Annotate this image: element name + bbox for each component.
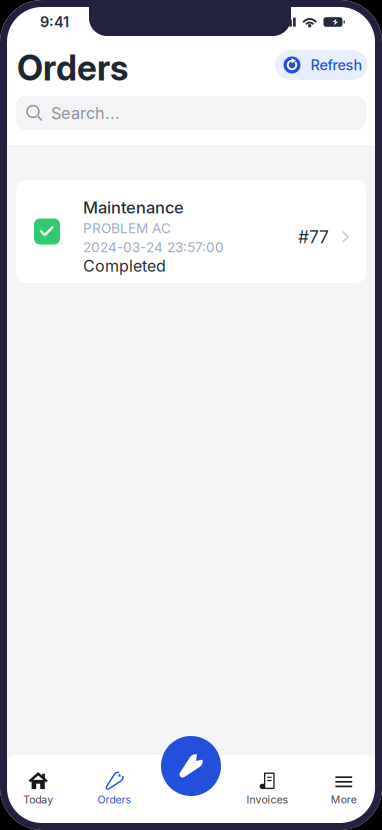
staticText: Completed xyxy=(83,256,166,275)
staticText: Invoices xyxy=(246,793,288,806)
button[interactable]: Today xyxy=(0,755,76,823)
staticText: #77 xyxy=(298,226,329,247)
button[interactable]: Maintenance xyxy=(16,180,366,283)
staticText: Refresh xyxy=(310,56,362,74)
staticText: 9:41 xyxy=(40,13,69,31)
staticText: Orders xyxy=(17,47,128,89)
button[interactable]: Refresh xyxy=(275,50,367,90)
staticText: More xyxy=(331,793,357,806)
staticText: Orders xyxy=(98,793,132,806)
button[interactable]: Invoices xyxy=(229,755,306,823)
staticText: Today xyxy=(23,793,53,806)
staticText: Search... xyxy=(51,103,120,123)
button[interactable]: More xyxy=(306,755,382,823)
staticText: PROBLEM AC xyxy=(83,220,171,236)
button[interactable]: New service request xyxy=(161,736,221,796)
staticText: Maintenance xyxy=(83,198,184,217)
staticText: 2024-03-24 23:57:00 xyxy=(83,239,224,255)
button[interactable]: Orders xyxy=(76,755,153,823)
button[interactable]: Search... xyxy=(16,96,366,130)
